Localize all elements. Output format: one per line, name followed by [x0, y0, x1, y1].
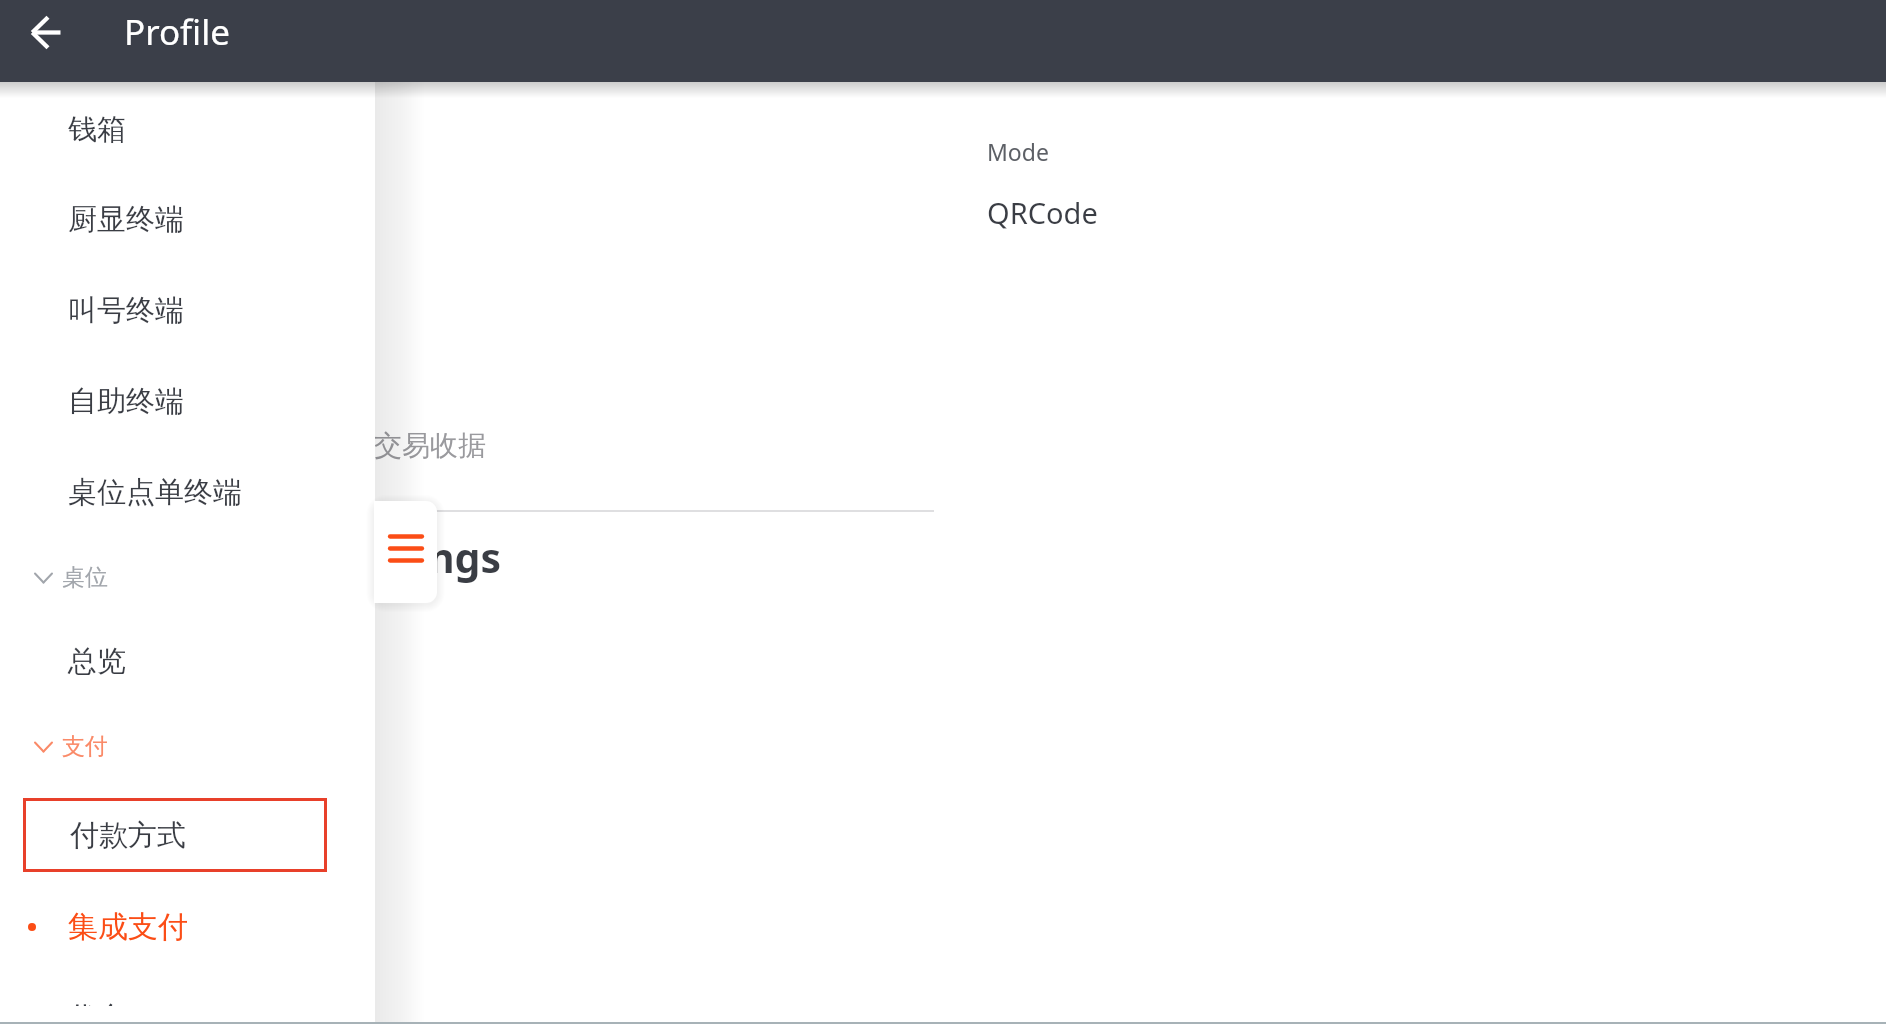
staticText: 代金 — [68, 1000, 126, 1006]
staticText: QRCode — [987, 193, 1098, 232]
staticText: 付款方式 — [70, 817, 186, 854]
button[interactable]: Mode — [987, 128, 1507, 238]
button[interactable]: 桌位 — [0, 547, 375, 607]
staticText: 钱箱 — [68, 111, 126, 148]
button[interactable]: 厨显终端 — [0, 181, 375, 257]
staticText: 总览 — [68, 643, 126, 680]
staticText: 支付 — [62, 732, 108, 761]
button[interactable]: Open navigation menu — [374, 501, 437, 603]
button[interactable]: 集成支付 — [0, 889, 375, 965]
staticText: 厨显终端 — [68, 201, 184, 238]
button[interactable]: 钱箱 — [0, 91, 375, 167]
button[interactable]: 自助终端 — [0, 363, 375, 439]
button[interactable]: 代金 — [0, 1000, 375, 1007]
staticText: 集成支付 — [68, 908, 188, 946]
button[interactable]: 叫号终端 — [0, 272, 375, 348]
staticText: Settings — [333, 529, 502, 585]
staticText: Mode — [987, 136, 1049, 167]
staticText: 交易收据 — [374, 428, 486, 463]
button[interactable]: Back — [11, 2, 73, 64]
button[interactable]: 总览 — [0, 623, 375, 699]
staticText: 桌位 — [62, 563, 108, 592]
button[interactable]: 支付 — [0, 716, 375, 776]
staticText: Profile — [124, 8, 230, 56]
staticText: 桌位点单终端 — [68, 474, 242, 511]
button[interactable]: 桌位点单终端 — [0, 454, 375, 530]
staticText: 叫号终端 — [68, 292, 184, 329]
button[interactable]: 付款方式 — [23, 798, 327, 872]
staticText: 自助终端 — [68, 383, 184, 420]
